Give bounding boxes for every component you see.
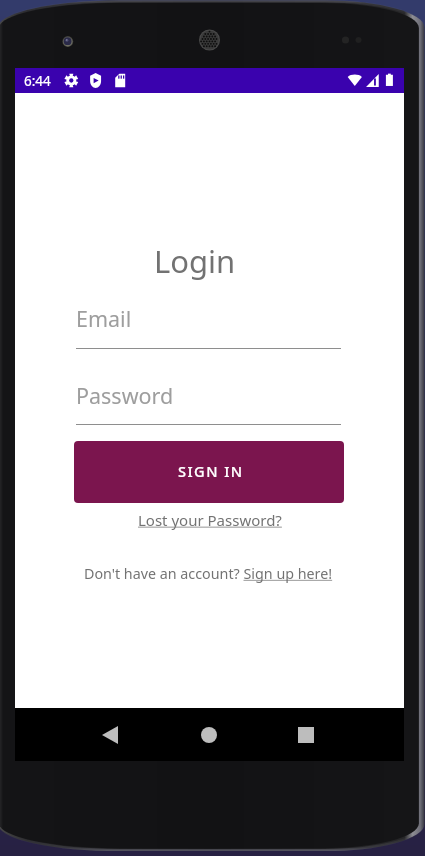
staticText: Lost your Password? <box>138 510 282 530</box>
button[interactable]: Back <box>84 708 136 761</box>
button[interactable]: SIGN IN <box>74 441 344 503</box>
staticText: Password <box>76 381 174 410</box>
staticText: SIGN IN <box>178 461 244 481</box>
staticText: Login <box>154 240 236 282</box>
button[interactable]: Password <box>76 379 341 425</box>
staticText: 6:44 <box>24 72 51 90</box>
staticText: Don't have an account? Sign up here! <box>84 564 333 583</box>
staticText: Email <box>76 304 132 333</box>
button[interactable]: Don't have an account? Sign up here! <box>84 564 333 583</box>
button[interactable]: Lost your Password? <box>138 510 282 530</box>
button[interactable]: Home <box>183 708 235 761</box>
button[interactable]: Recent apps <box>280 708 332 761</box>
button[interactable]: Email <box>76 302 341 349</box>
